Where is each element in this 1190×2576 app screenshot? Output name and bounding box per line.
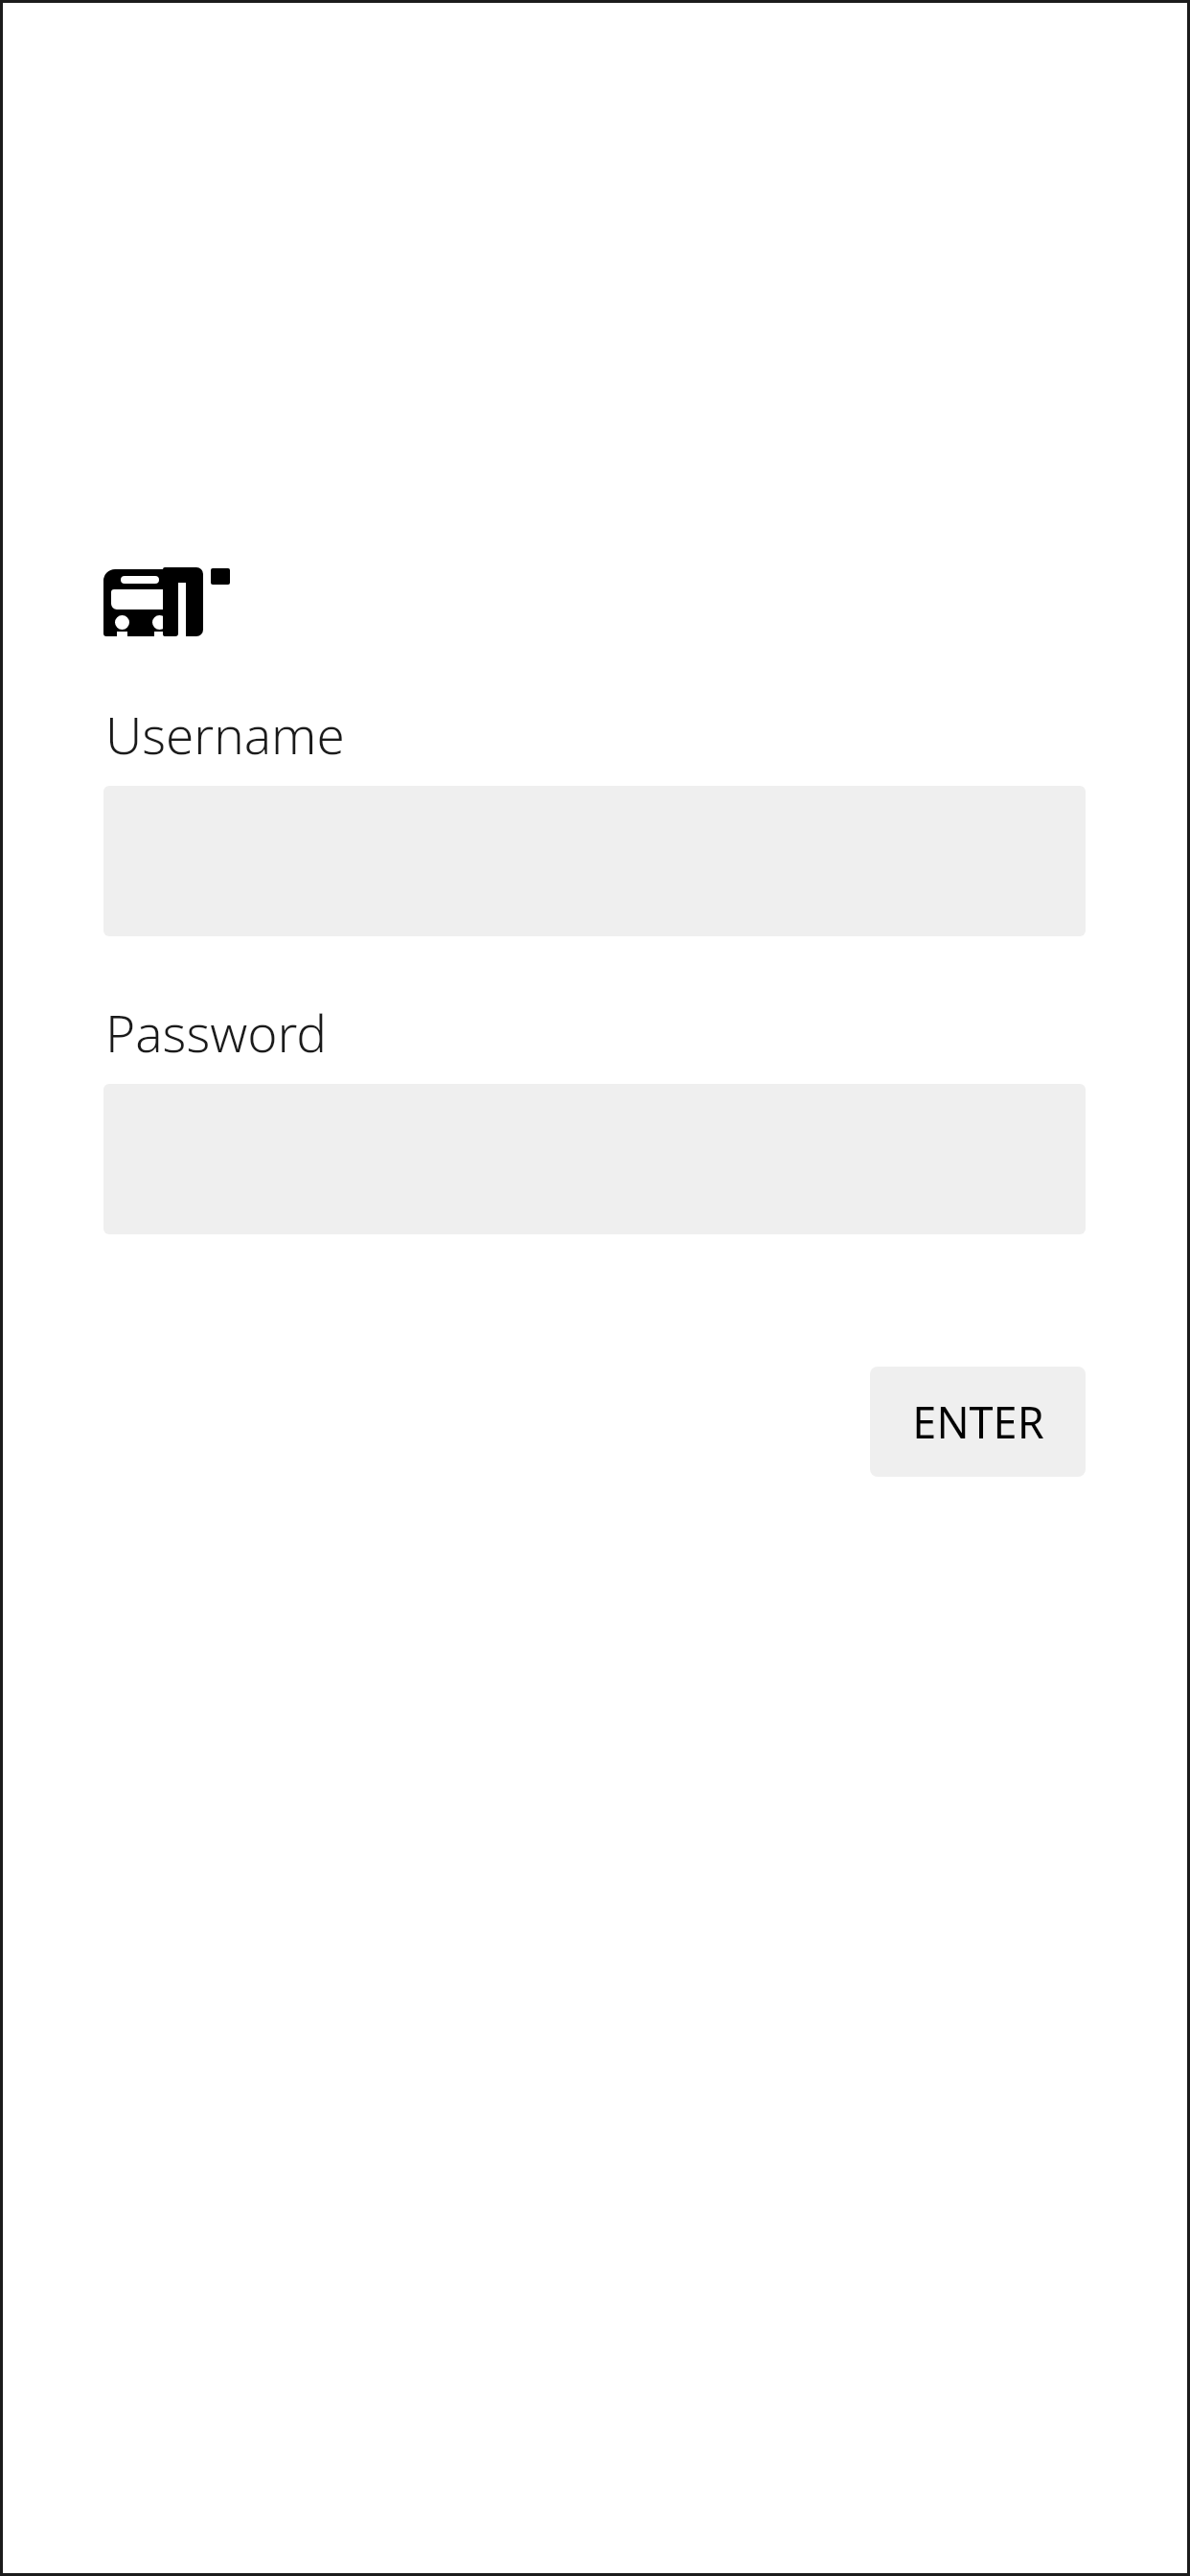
staticText: Username xyxy=(105,700,345,769)
other: Bus stop logo xyxy=(103,567,230,644)
button[interactable]: ENTER xyxy=(870,1367,1086,1477)
staticText: Password xyxy=(105,998,328,1067)
staticText: ENTER xyxy=(912,1392,1044,1451)
